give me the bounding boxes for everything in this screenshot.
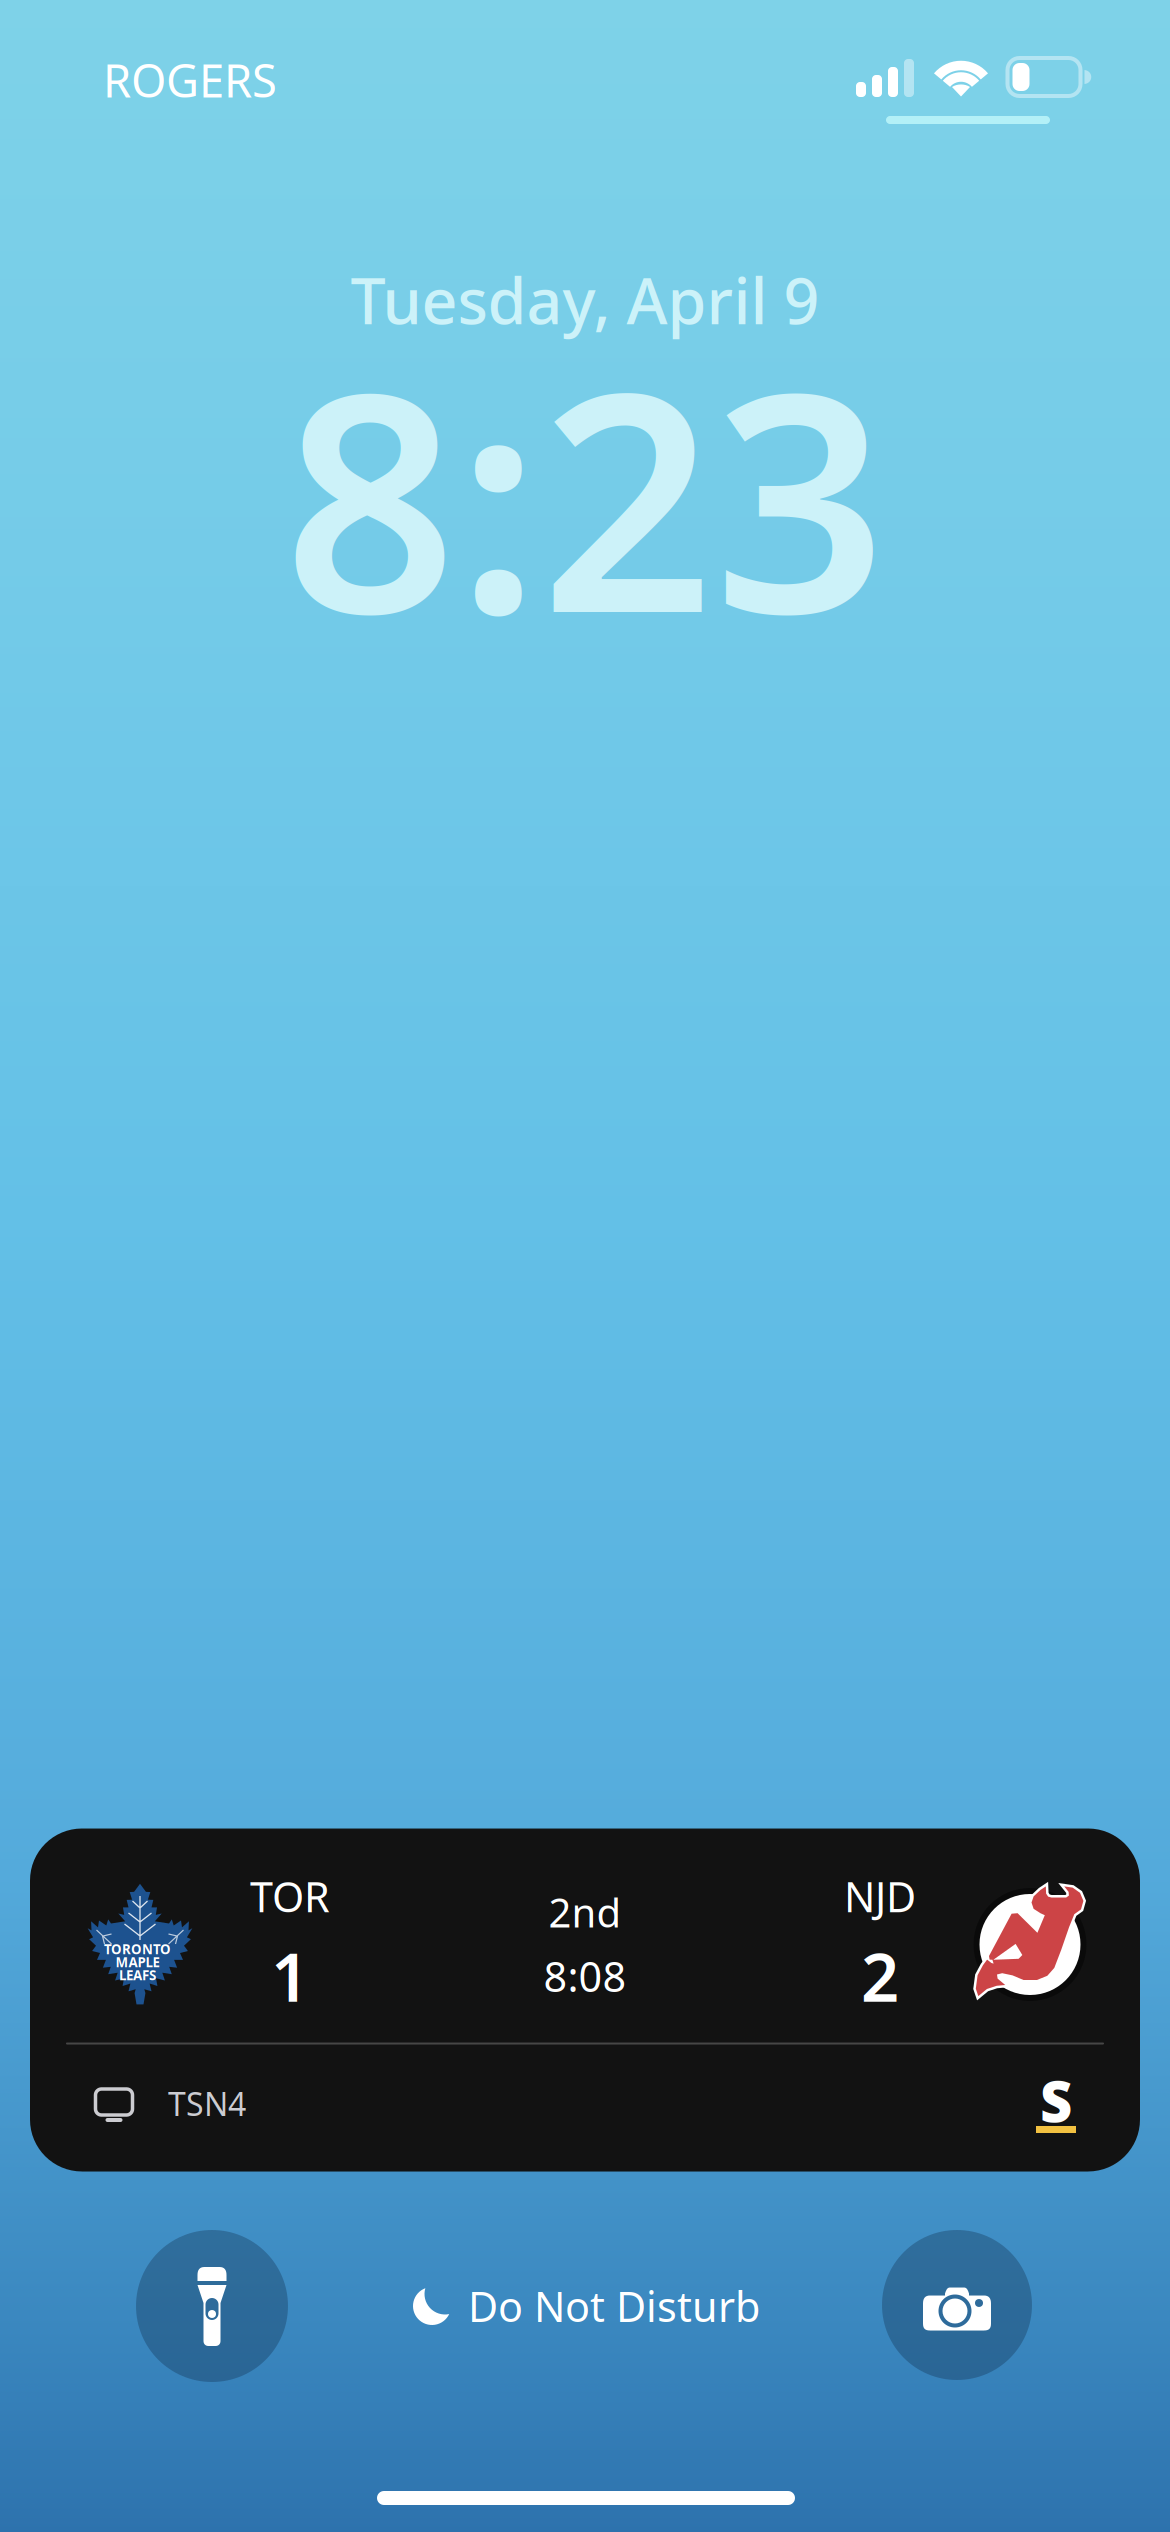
staticText: Do Not Disturb [468,2279,760,2333]
staticText: 8:23 [283,294,886,696]
staticText: TOR [250,1869,330,1924]
staticText: Tuesday, April 9 [350,258,819,342]
staticText: 2 [861,1932,899,2020]
staticText: NJD [844,1869,916,1924]
staticText: MAPLE [115,1953,159,1971]
button[interactable]: Flashlight [136,2230,288,2382]
staticText: LEAFS [119,1966,156,1984]
button[interactable]: TORONTO [30,1828,1140,2171]
button[interactable]: Camera [882,2230,1032,2380]
staticText: TSN4 [168,2082,246,2125]
staticText: 2nd [548,1885,621,1939]
staticText: 8:08 [543,1949,626,2003]
staticText: 1 [271,1932,309,2020]
staticText: S [1040,2063,1072,2138]
button[interactable]: Do Not Disturb [412,2279,760,2333]
staticText: TORONTO [104,1940,171,1958]
staticText: ROGERS [103,50,277,110]
